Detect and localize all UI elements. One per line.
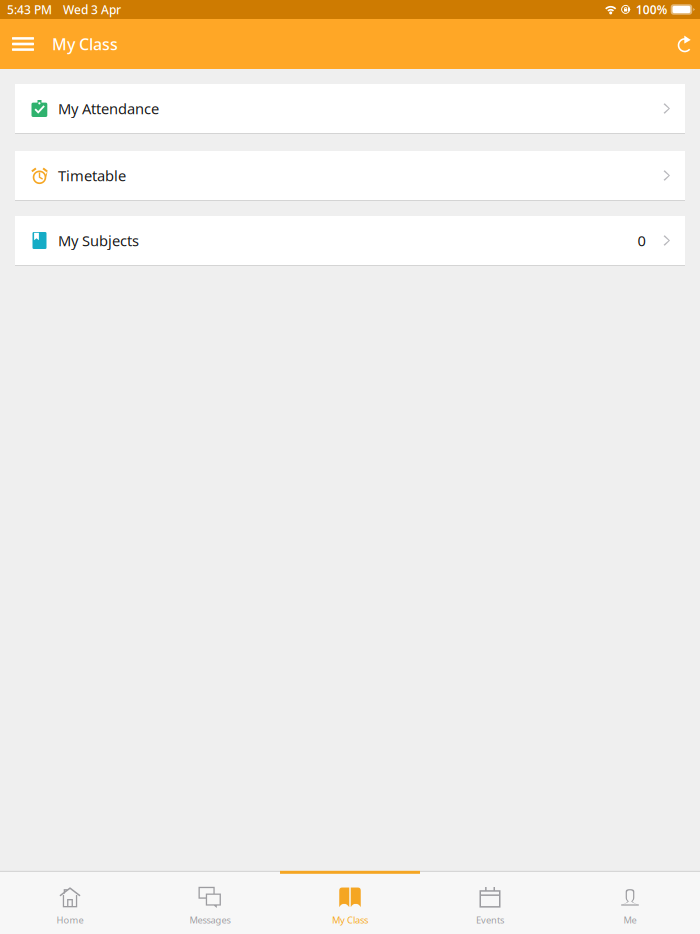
staticText: 0: [638, 231, 646, 250]
staticText: Wed 3 Apr: [63, 1, 121, 17]
button[interactable]: My Class: [280, 871, 420, 934]
button[interactable]: Events: [420, 871, 560, 934]
button[interactable]: Me: [560, 871, 700, 934]
staticText: Me: [623, 914, 636, 926]
staticText: Home: [56, 914, 83, 926]
staticText: My Class: [332, 914, 368, 926]
staticText: Messages: [189, 914, 230, 926]
button[interactable]: Menu: [0, 21, 46, 66]
staticText: 5:43 PM: [7, 1, 52, 17]
staticText: 100%: [636, 1, 668, 17]
button[interactable]: My Attendance: [15, 84, 685, 134]
button[interactable]: Timetable: [15, 151, 685, 201]
button[interactable]: Refresh: [670, 22, 700, 66]
button[interactable]: Home: [0, 871, 140, 934]
staticText: My Subjects: [58, 231, 139, 250]
staticText: Timetable: [58, 166, 126, 185]
staticText: My Class: [52, 33, 118, 55]
button[interactable]: Messages: [140, 871, 280, 934]
staticText: Events: [476, 914, 504, 926]
button[interactable]: My Subjects: [15, 216, 685, 266]
staticText: My Attendance: [58, 99, 159, 118]
